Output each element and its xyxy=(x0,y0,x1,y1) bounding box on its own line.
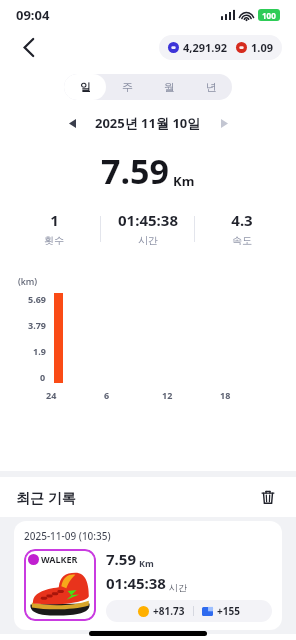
button[interactable]: 월 xyxy=(148,74,190,100)
staticText: +155 xyxy=(217,604,240,618)
staticText: 시간 xyxy=(138,234,158,247)
staticText: 주 xyxy=(122,80,133,94)
staticText: 시간 xyxy=(169,582,187,593)
button[interactable]: Next day xyxy=(213,112,235,134)
button[interactable]: 년 xyxy=(190,74,232,100)
staticText: 3.79 xyxy=(28,319,46,331)
staticText: 24 xyxy=(46,389,57,401)
staticText: 년 xyxy=(206,80,217,94)
staticText: Km xyxy=(173,172,195,190)
button[interactable]: +81.73 xyxy=(106,600,272,622)
staticText: 12 xyxy=(162,389,173,401)
staticText: (km) xyxy=(18,275,38,287)
staticText: Km xyxy=(139,557,154,569)
staticText: 월 xyxy=(164,80,175,94)
staticText: +81.73 xyxy=(153,604,185,618)
staticText: 6 xyxy=(104,389,110,401)
staticText: 18 xyxy=(220,389,231,401)
button[interactable]: Delete records xyxy=(256,485,280,509)
staticText: 1.09 xyxy=(251,40,273,55)
button[interactable]: 일 xyxy=(64,74,106,100)
staticText: 01:45:38 xyxy=(118,210,178,230)
staticText: 4,291.92 xyxy=(183,40,227,55)
staticText: 1.9 xyxy=(33,345,46,357)
staticText: 01:45:38 xyxy=(106,573,166,593)
staticText: 4.3 xyxy=(231,210,253,230)
button[interactable]: 4,291.92 xyxy=(159,35,282,60)
staticText: 2025년 11월 10일 xyxy=(95,114,201,132)
button[interactable]: E WALKER sneaker xyxy=(24,549,96,621)
staticText: 0 xyxy=(40,371,46,383)
staticText: 속도 xyxy=(232,234,252,247)
staticText: 100 xyxy=(262,10,276,21)
staticText: WALKER xyxy=(41,553,78,565)
staticText: 7.59 xyxy=(101,148,169,194)
staticText: 2025-11-09 (10:35) xyxy=(24,529,111,543)
staticText: 1 xyxy=(50,210,59,230)
staticText: 횟수 xyxy=(44,234,64,247)
button[interactable]: Back xyxy=(14,32,44,62)
staticText: 09:04 xyxy=(16,6,50,24)
staticText: 일 xyxy=(80,80,91,94)
staticText: 최근 기록 xyxy=(16,488,76,507)
button[interactable]: 2025-11-09 (10:35) xyxy=(14,521,282,630)
button[interactable]: Previous day xyxy=(61,112,83,134)
staticText: 5.69 xyxy=(28,293,46,305)
button[interactable]: 주 xyxy=(106,74,148,100)
staticText: 7.59 xyxy=(106,549,136,569)
